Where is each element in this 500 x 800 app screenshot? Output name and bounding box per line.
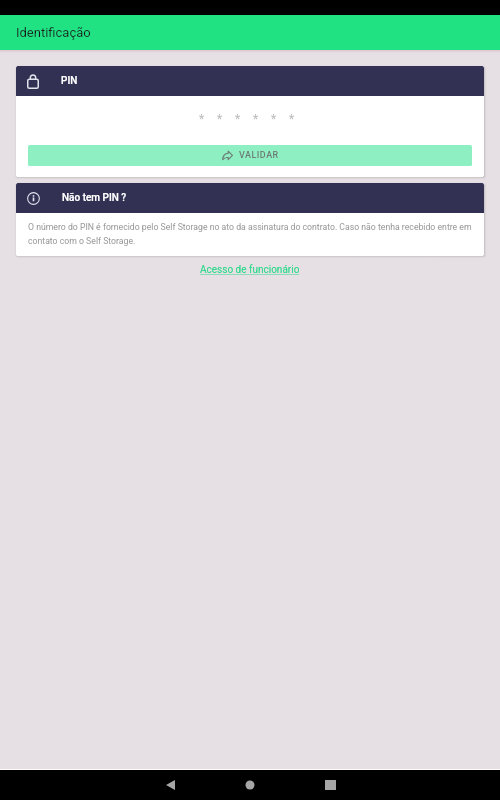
- button[interactable]: Acesso de funcionário: [196, 260, 304, 280]
- staticText: *: [199, 112, 205, 126]
- button[interactable]: Campo PIN: [16, 96, 484, 145]
- button[interactable]: Back: [157, 772, 183, 798]
- staticText: VALIDAR: [239, 150, 279, 161]
- staticText: Não tem PIN ?: [62, 192, 127, 204]
- button[interactable]: VALIDAR: [28, 145, 472, 166]
- staticText: *: [253, 112, 259, 126]
- staticText: *: [289, 112, 295, 126]
- staticText: *: [217, 112, 223, 126]
- staticText: Identificação: [16, 25, 91, 40]
- button[interactable]: Home: [237, 772, 263, 798]
- button[interactable]: Recent apps: [317, 772, 343, 798]
- staticText: *: [271, 112, 277, 126]
- staticText: *: [235, 112, 241, 126]
- staticText: PIN: [61, 75, 78, 87]
- staticText: O número do PIN é fornecido pelo Self St…: [28, 222, 472, 246]
